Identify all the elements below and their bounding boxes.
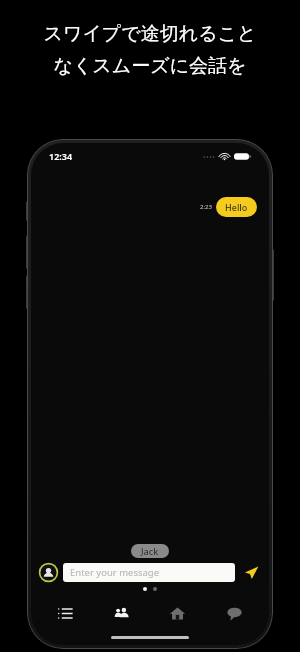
staticText: スワイプで途切れること: [43, 22, 257, 46]
button[interactable]: Jack: [131, 544, 169, 558]
button[interactable]: Profile: [39, 563, 58, 582]
staticText: 2:23: [200, 203, 212, 211]
button[interactable]: Enter your message: [63, 563, 235, 582]
button[interactable]: Home: [149, 597, 206, 629]
staticText: Enter your message: [70, 566, 160, 579]
staticText: 12:34: [49, 150, 73, 162]
staticText: Jack: [141, 545, 159, 557]
staticText: Hello: [225, 201, 248, 213]
button[interactable]: 2:23: [200, 197, 257, 217]
button[interactable]: List: [37, 597, 93, 629]
button[interactable]: Send: [241, 562, 261, 582]
button[interactable]: Chat: [206, 597, 263, 629]
button[interactable]: People: [93, 597, 149, 629]
staticText: なくスムーズに会話を: [53, 54, 247, 78]
